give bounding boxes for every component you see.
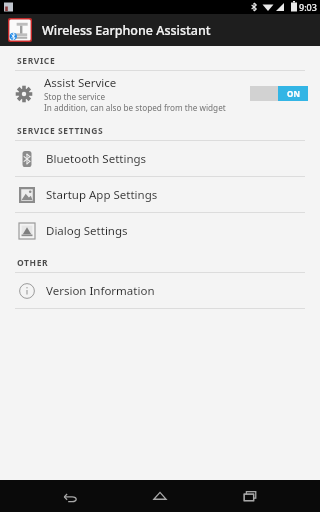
button[interactable]: Home	[140, 480, 180, 512]
staticText: Assist Service	[44, 75, 117, 91]
staticText: SERVICE	[17, 55, 56, 67]
staticText: Dialog Settings	[46, 223, 128, 239]
staticText: SERVICE SETTINGS	[17, 125, 104, 137]
staticText: OTHER	[17, 257, 49, 269]
staticText: Bluetooth Settings	[46, 151, 147, 167]
staticText: In addition, can also be stoped from the…	[44, 102, 226, 113]
button[interactable]: Toggle assist service	[250, 86, 308, 101]
button[interactable]: Dialog Settings	[0, 213, 320, 248]
staticText: Wireless Earphone Assistant	[42, 22, 211, 39]
button[interactable]: Version Information	[0, 273, 320, 308]
button[interactable]: Back	[50, 480, 90, 512]
staticText: Version Information	[46, 283, 155, 299]
button[interactable]: Startup App Settings	[0, 177, 320, 212]
staticText: Stop the service	[44, 91, 106, 102]
staticText: 9:03	[299, 1, 317, 13]
button[interactable]: Assist Service	[0, 71, 320, 116]
button[interactable]: Recents	[230, 480, 270, 512]
staticText: Startup App Settings	[46, 187, 158, 203]
button[interactable]: Bluetooth Settings	[0, 141, 320, 176]
staticText: ON	[287, 88, 300, 99]
